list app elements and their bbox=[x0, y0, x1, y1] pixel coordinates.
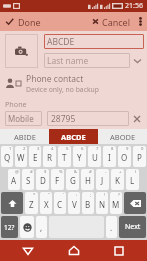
staticText: 4 bbox=[51, 146, 54, 152]
button[interactable]: 5 bbox=[58, 146, 71, 167]
staticText: E bbox=[33, 152, 38, 163]
staticText: Q bbox=[4, 152, 11, 163]
staticText: I bbox=[108, 152, 111, 163]
button[interactable]: 6 bbox=[73, 146, 86, 167]
button[interactable]: 2 bbox=[15, 146, 27, 167]
staticText: D bbox=[40, 175, 46, 186]
button[interactable]: $ bbox=[36, 169, 49, 190]
staticText: 21:56 bbox=[125, 1, 143, 11]
staticText: Device only, no backup bbox=[26, 85, 99, 94]
staticText: Mobile bbox=[8, 113, 34, 124]
staticText: ? bbox=[118, 192, 120, 198]
staticText: * bbox=[33, 192, 36, 198]
button[interactable]: ABCDE bbox=[44, 34, 144, 49]
button[interactable]: Recent apps bbox=[102, 240, 136, 261]
button[interactable]: & bbox=[66, 169, 79, 190]
button[interactable]: 0 bbox=[133, 146, 146, 167]
staticText: ABCDE bbox=[47, 36, 75, 48]
button[interactable]: More options bbox=[134, 12, 147, 31]
staticText: & bbox=[74, 169, 78, 175]
staticText: Z bbox=[29, 199, 34, 210]
staticText: # bbox=[89, 169, 92, 175]
button[interactable]: . bbox=[106, 216, 117, 238]
staticText: 6 bbox=[81, 146, 84, 152]
staticText: L bbox=[130, 175, 135, 186]
button[interactable]: 7 bbox=[88, 146, 101, 167]
button[interactable]: # bbox=[22, 169, 34, 190]
staticText: 2 bbox=[23, 146, 26, 152]
button[interactable]: ! bbox=[96, 192, 108, 214]
button[interactable]: 9 bbox=[118, 146, 131, 167]
button[interactable]: ABCDE bbox=[49, 129, 98, 144]
button[interactable]: ABODE bbox=[98, 129, 147, 144]
staticText: U bbox=[92, 152, 98, 163]
button[interactable]: Back bbox=[11, 240, 45, 261]
button[interactable]: % bbox=[51, 169, 64, 190]
staticText: Next bbox=[125, 222, 141, 232]
button[interactable]: Add contact photo bbox=[5, 34, 38, 68]
staticText: N bbox=[99, 199, 106, 210]
staticText: , bbox=[40, 222, 43, 233]
button[interactable]: ' bbox=[54, 192, 66, 214]
staticText: 9 bbox=[126, 146, 129, 152]
button[interactable]: - bbox=[96, 169, 109, 190]
button[interactable]: 3 bbox=[29, 146, 41, 167]
button[interactable]: Next bbox=[119, 216, 146, 238]
button[interactable]: , bbox=[36, 216, 47, 238]
button[interactable]: ( bbox=[126, 169, 139, 190]
staticText: S bbox=[26, 175, 31, 186]
button[interactable]: Cancel bbox=[89, 12, 134, 31]
button[interactable]: : bbox=[68, 192, 80, 214]
button[interactable]: Phone contact bbox=[0, 72, 147, 94]
staticText: ; bbox=[90, 192, 92, 198]
button[interactable]: Done bbox=[0, 12, 47, 31]
staticText: # bbox=[30, 169, 33, 175]
staticText: 8 bbox=[111, 146, 114, 152]
button[interactable]: 28795 bbox=[47, 111, 129, 126]
staticText: O bbox=[121, 152, 128, 163]
button[interactable]: # bbox=[81, 169, 94, 190]
staticText: ABCDE bbox=[61, 132, 86, 142]
staticText: Last name bbox=[47, 55, 89, 67]
staticText: X bbox=[44, 199, 49, 210]
staticText: Phone bbox=[5, 99, 27, 109]
staticText: - bbox=[105, 169, 107, 175]
staticText: M bbox=[112, 199, 120, 210]
staticText: ABODE bbox=[110, 132, 136, 142]
button[interactable]: Mobile bbox=[5, 111, 42, 126]
staticText: . bbox=[110, 222, 113, 233]
button[interactable]: * bbox=[25, 192, 38, 214]
staticText: T bbox=[62, 152, 67, 163]
button[interactable]: Emoji bbox=[20, 216, 34, 238]
staticText: ! bbox=[104, 192, 106, 198]
button[interactable]: ABIDE bbox=[0, 129, 49, 144]
button[interactable]: ; bbox=[82, 192, 94, 214]
staticText: 28795 bbox=[51, 113, 76, 125]
button[interactable]: + bbox=[111, 169, 124, 190]
staticText: + bbox=[119, 169, 122, 175]
staticText: Cancel bbox=[102, 16, 131, 28]
staticText: J bbox=[101, 175, 104, 186]
staticText: Y bbox=[77, 152, 82, 163]
button[interactable]: @ bbox=[8, 169, 20, 190]
button[interactable]: 8 bbox=[103, 146, 116, 167]
button[interactable]: ? bbox=[110, 192, 122, 214]
staticText: 1 bbox=[9, 146, 12, 152]
staticText: B bbox=[85, 199, 91, 210]
staticText: R bbox=[47, 152, 52, 163]
button[interactable]: Expand name fields bbox=[130, 54, 144, 68]
button[interactable]: " bbox=[40, 192, 52, 214]
button[interactable]: Shift bbox=[1, 192, 23, 214]
staticText: K bbox=[115, 175, 120, 186]
button[interactable]: Last name bbox=[44, 53, 130, 68]
button[interactable]: 4 bbox=[43, 146, 56, 167]
button[interactable]: Numbers and symbols bbox=[1, 216, 18, 238]
staticText: 7 bbox=[96, 146, 99, 152]
button[interactable]: Remove phone number bbox=[129, 111, 144, 126]
button[interactable]: Home bbox=[57, 240, 91, 261]
button[interactable]: 1 bbox=[1, 146, 13, 167]
staticText: 12? bbox=[4, 223, 15, 232]
button[interactable]: Backspace bbox=[124, 192, 146, 214]
staticText: @ bbox=[15, 169, 19, 175]
